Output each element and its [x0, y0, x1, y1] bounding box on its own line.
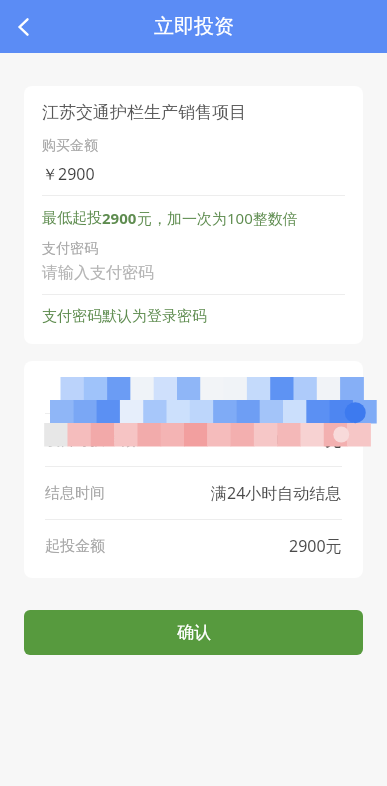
staticText: 结息时间	[45, 484, 105, 503]
staticText: 元，加一次为100整数倍	[137, 208, 298, 228]
staticText: 78.31	[301, 376, 342, 398]
staticText: 支付密码默认为登录密码	[42, 307, 207, 326]
staticText: ￥2900	[42, 163, 95, 185]
staticText: 江苏交通护栏生产销售项目	[42, 102, 246, 123]
staticText: 15985500元	[252, 429, 342, 451]
staticText: 立即投资	[154, 14, 234, 39]
staticText: 起投金额	[45, 537, 105, 556]
button[interactable]: 结息时间	[24, 467, 363, 519]
button[interactable]: 项目可投金额	[24, 414, 363, 466]
staticText: 购买金额	[42, 137, 98, 155]
staticText: 2900	[102, 208, 137, 228]
button[interactable]: 起投金额	[24, 520, 363, 572]
staticText: 最低起投	[42, 209, 102, 228]
staticText: 2900元	[289, 535, 342, 557]
staticText: 支付密码	[42, 240, 98, 258]
button[interactable]: Back	[0, 3, 48, 51]
staticText: 项目可投金额	[45, 431, 135, 450]
staticText: 确认	[177, 622, 211, 643]
button[interactable]: 请输入支付密码	[42, 263, 345, 283]
staticText: 请输入支付密码	[42, 263, 154, 283]
button[interactable]: 确认	[24, 610, 363, 655]
staticText: 满24小时自动结息	[211, 482, 342, 504]
